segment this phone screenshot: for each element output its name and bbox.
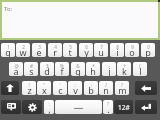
staticText: ; (90, 82, 92, 88)
staticText: c (58, 84, 63, 95)
button[interactable]: Space (55, 100, 102, 114)
staticText: n (103, 84, 109, 95)
staticText: To: (4, 5, 13, 13)
button[interactable]: 8 (110, 43, 124, 57)
staticText: d (44, 65, 50, 76)
staticText: o (129, 46, 135, 57)
button[interactable]: - (102, 62, 116, 76)
staticText: $ (46, 63, 49, 69)
staticText: . (107, 103, 110, 114)
button[interactable]: % (55, 62, 69, 76)
button[interactable]: : (68, 81, 82, 95)
button[interactable]: ! (22, 81, 36, 95)
staticText: ' (59, 82, 61, 88)
button[interactable]: + (117, 62, 131, 76)
staticText: t (68, 46, 72, 57)
button[interactable]: ; (84, 81, 98, 95)
button[interactable]: 9 (125, 43, 139, 57)
staticText: x (42, 84, 47, 95)
staticText: @ (14, 63, 19, 69)
button[interactable]: * (86, 62, 100, 76)
button[interactable]: 2 (16, 43, 30, 57)
staticText: 5 (69, 44, 72, 50)
staticText: b (88, 84, 94, 95)
staticText: p (145, 46, 151, 57)
button[interactable]: ? (103, 100, 113, 114)
staticText: / (105, 82, 107, 88)
staticText: r (53, 46, 57, 57)
staticText: 12# (118, 103, 130, 112)
staticText: " (43, 82, 45, 88)
staticText: z (27, 84, 32, 95)
staticText: f (60, 65, 64, 76)
staticText: y (84, 46, 89, 57)
staticText: ? (107, 101, 109, 107)
button[interactable]: Settings (22, 100, 42, 114)
button[interactable]: Enter (135, 100, 157, 114)
staticText: ? (121, 82, 123, 88)
button[interactable]: Switch input method (1, 100, 21, 114)
button[interactable]: 12# (114, 100, 133, 114)
staticText: j (108, 65, 111, 76)
staticText: 2 (22, 44, 25, 50)
button[interactable]: Shift (1, 81, 19, 95)
button[interactable]: Backspace (135, 81, 157, 95)
staticText: m (118, 84, 127, 95)
staticText: a (13, 65, 19, 76)
staticText: l (139, 65, 142, 76)
staticText: 6 (85, 44, 88, 50)
button[interactable]: @ (9, 62, 23, 76)
button[interactable]: ? (115, 81, 129, 95)
staticText: i (116, 46, 119, 57)
button[interactable]: 1 (1, 43, 15, 57)
button[interactable]: " (37, 81, 51, 95)
staticText: 4 (54, 44, 57, 50)
button[interactable]: # (24, 62, 38, 76)
button[interactable]: 5 (63, 43, 77, 57)
staticText: % (60, 63, 64, 69)
staticText: q (5, 46, 11, 57)
staticText: 7 (100, 44, 103, 50)
staticText: - (108, 63, 110, 69)
staticText: v (73, 84, 78, 95)
staticText: : (74, 82, 76, 88)
staticText: w (19, 46, 27, 57)
staticText: 9 (131, 44, 134, 50)
button[interactable]: : (44, 100, 54, 114)
staticText: s (29, 65, 34, 76)
staticText: 1 (7, 44, 10, 50)
staticText: 0 (147, 44, 150, 50)
staticText: e (36, 46, 42, 57)
staticText: * (92, 63, 95, 69)
button[interactable]: 3 (32, 43, 46, 57)
button[interactable]: 6 (79, 43, 93, 57)
staticText: # (30, 63, 33, 69)
staticText: 3 (38, 44, 41, 50)
button[interactable]: 4 (48, 43, 62, 57)
staticText: & (76, 63, 80, 69)
staticText: , (48, 103, 51, 114)
button[interactable]: 0 (141, 43, 155, 57)
staticText: ! (28, 82, 30, 88)
staticText: h (90, 65, 96, 76)
button[interactable]: 7 (94, 43, 108, 57)
button[interactable]: To: (2, 2, 158, 38)
staticText: u (98, 46, 104, 57)
button[interactable]: ( (133, 62, 147, 76)
staticText: ( (139, 63, 141, 69)
staticText: g (75, 65, 81, 76)
button[interactable]: ' (53, 81, 67, 95)
staticText: + (123, 63, 126, 69)
button[interactable]: / (99, 81, 113, 95)
button[interactable]: & (71, 62, 85, 76)
staticText: k (122, 65, 127, 76)
staticText: 8 (116, 44, 119, 50)
button[interactable]: $ (40, 62, 54, 76)
staticText: : (48, 101, 50, 107)
